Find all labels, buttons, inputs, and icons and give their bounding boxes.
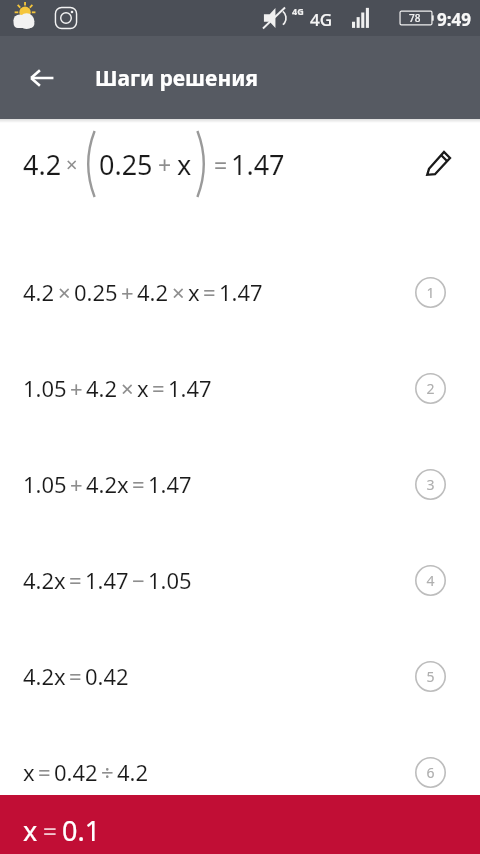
staticText: 3 xyxy=(426,475,435,494)
staticText: = xyxy=(214,149,228,180)
staticText: 1.47 xyxy=(85,565,129,595)
button[interactable]: 4.2x xyxy=(0,532,480,628)
staticText: 0.25 xyxy=(74,277,118,307)
staticText: × xyxy=(58,277,71,307)
staticText: 78 xyxy=(409,11,421,25)
staticText: 4.2 xyxy=(86,373,118,403)
button[interactable]: Edit xyxy=(414,140,462,188)
staticText: × xyxy=(66,151,78,178)
staticText: 4.2x xyxy=(23,661,66,691)
staticText: 1 xyxy=(426,283,435,302)
staticText: ÷ xyxy=(101,757,114,787)
staticText: 4G xyxy=(310,8,333,31)
staticText: = xyxy=(203,277,216,307)
staticText: × xyxy=(121,373,134,403)
staticText: x xyxy=(23,757,35,787)
button[interactable]: 4.2 xyxy=(0,244,480,340)
staticText: 4.2 xyxy=(23,146,62,183)
button[interactable]: 1.05 xyxy=(0,436,480,532)
staticText: x xyxy=(188,277,200,307)
staticText: 1.47 xyxy=(148,469,192,499)
staticText: + xyxy=(70,373,83,403)
staticText: 1.47 xyxy=(219,277,263,307)
staticText: 4.2 xyxy=(137,277,169,307)
staticText: 4.2 xyxy=(117,757,149,787)
staticText: = xyxy=(38,757,51,787)
staticText: + xyxy=(158,149,172,180)
staticText: 4.2x xyxy=(23,565,66,595)
staticText: × xyxy=(172,277,185,307)
staticText: 0.42 xyxy=(54,757,98,787)
staticText: − xyxy=(132,565,145,595)
staticText: + xyxy=(121,277,134,307)
staticText: 0.1 xyxy=(62,812,101,849)
staticText: 4.2x xyxy=(86,469,129,499)
button[interactable]: x xyxy=(0,724,480,820)
staticText: 1.05 xyxy=(23,373,67,403)
staticText: 6 xyxy=(426,763,435,782)
button[interactable]: Back xyxy=(18,54,66,102)
staticText: 4 xyxy=(426,571,435,590)
staticText: = xyxy=(152,373,165,403)
staticText: 9:49 xyxy=(437,8,471,31)
staticText: = xyxy=(69,565,82,595)
staticText: 0.25 xyxy=(99,146,153,183)
staticText: 0.42 xyxy=(85,661,129,691)
staticText: 4.2 xyxy=(23,277,55,307)
button[interactable]: 4.2x xyxy=(0,628,480,724)
staticText: = xyxy=(132,469,145,499)
staticText: = xyxy=(69,661,82,691)
staticText: 2 xyxy=(426,379,435,398)
staticText: + xyxy=(70,469,83,499)
button[interactable]: 4.2 xyxy=(0,119,480,209)
button[interactable]: x xyxy=(0,795,480,854)
staticText: 1.47 xyxy=(231,146,285,183)
staticText: 1.47 xyxy=(168,373,212,403)
button[interactable]: 1.05 xyxy=(0,340,480,436)
staticText: x xyxy=(137,373,149,403)
staticText: Шаги решения xyxy=(95,64,259,93)
staticText: 1.05 xyxy=(148,565,192,595)
staticText: = xyxy=(43,814,57,847)
staticText: 5 xyxy=(426,667,435,686)
staticText: 4G xyxy=(292,5,304,17)
staticText: x xyxy=(23,812,38,849)
staticText: x xyxy=(177,146,192,183)
staticText: 1.05 xyxy=(23,469,67,499)
